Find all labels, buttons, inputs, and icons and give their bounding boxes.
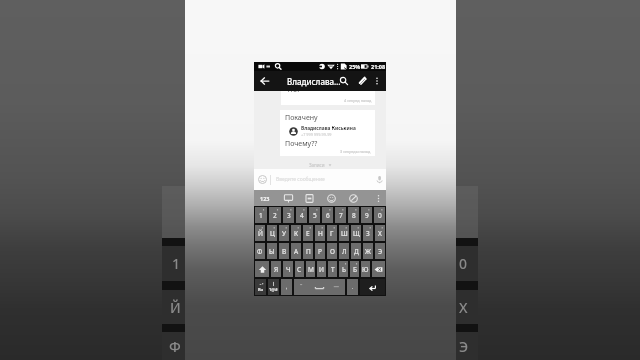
staticText: 1 [172, 254, 181, 273]
button[interactable]: Ц [267, 225, 277, 241]
button[interactable]: Voice message [372, 169, 386, 190]
button[interactable]: , [281, 279, 292, 295]
button[interactable]: Н [315, 225, 325, 241]
staticText: 7 [339, 211, 343, 220]
button[interactable]: Search [334, 71, 354, 91]
staticText: 1 [259, 211, 263, 220]
button[interactable]: Numbers [254, 190, 276, 206]
button[interactable]: Х [375, 225, 385, 241]
button[interactable]: Space [294, 279, 345, 295]
staticText: Записи [309, 162, 325, 168]
staticText: 9 [365, 211, 369, 220]
button[interactable]: П [303, 243, 313, 259]
button[interactable]: Symbols [268, 279, 279, 295]
staticText: Что? [285, 91, 301, 95]
button[interactable]: Emoji [323, 190, 340, 206]
button[interactable]: Я [271, 261, 281, 277]
button[interactable]: Т [328, 261, 337, 277]
staticText: Т [331, 265, 335, 274]
staticText: Ц [270, 229, 275, 238]
button[interactable]: 1 [255, 207, 267, 223]
staticText: 4 секунд назад [344, 98, 372, 103]
button[interactable]: Д [351, 243, 361, 259]
button[interactable]: Щ [351, 225, 361, 241]
staticText: И [319, 265, 324, 274]
staticText: 2 [273, 211, 277, 220]
staticText: Э [459, 337, 469, 356]
staticText: М [308, 265, 314, 274]
button[interactable]: З [363, 225, 373, 241]
staticText: Ru [258, 287, 264, 292]
staticText: 5 [313, 211, 317, 220]
button[interactable]: Л [339, 243, 349, 259]
staticText: Щ [353, 229, 360, 238]
button[interactable]: Ь [339, 261, 348, 277]
staticText: З [366, 229, 370, 238]
button[interactable]: Р [315, 243, 325, 259]
button[interactable]: 9 [361, 207, 372, 223]
staticText: Б [353, 265, 357, 274]
button[interactable]: Ы [267, 243, 277, 259]
staticText: А [294, 247, 299, 256]
staticText: 0 [378, 211, 382, 220]
staticText: . [352, 284, 354, 290]
button[interactable]: Clipboard [301, 190, 318, 206]
staticText: 1@# [269, 287, 278, 292]
staticText: 4 [300, 211, 304, 220]
button[interactable]: Themes [345, 190, 362, 206]
staticText: Е [306, 229, 310, 238]
button[interactable]: В [279, 243, 289, 259]
button[interactable]: С [295, 261, 304, 277]
staticText: О [330, 247, 335, 256]
button[interactable]: 8 [348, 207, 359, 223]
button[interactable]: Ш [339, 225, 349, 241]
button[interactable]: Shift [255, 261, 269, 277]
button[interactable]: К [291, 225, 301, 241]
button[interactable]: More options [368, 71, 386, 91]
staticText: Ч [286, 265, 291, 274]
staticText: Владислава Киськина [301, 125, 356, 132]
button[interactable]: Emoji [254, 169, 270, 190]
staticText: К [294, 229, 299, 238]
button[interactable]: А [291, 243, 301, 259]
staticText: Введите сообщение [276, 176, 372, 183]
button[interactable]: Ж [363, 243, 373, 259]
staticText: Ж [365, 247, 371, 256]
staticText: 123 [260, 195, 270, 202]
button[interactable]: 3 [283, 207, 294, 223]
button[interactable]: 7 [335, 207, 346, 223]
button[interactable]: . [347, 279, 358, 295]
staticText: В [282, 247, 287, 256]
button[interactable]: Й [255, 225, 265, 241]
button[interactable]: Г [327, 225, 337, 241]
staticText: Ф [169, 337, 181, 356]
staticText: Р [318, 247, 322, 256]
button[interactable]: 6 [322, 207, 333, 223]
button[interactable]: М [306, 261, 315, 277]
button[interactable]: 4 [296, 207, 307, 223]
button[interactable]: More [370, 190, 386, 206]
staticText: Ь [342, 265, 346, 274]
button[interactable]: Attach [352, 71, 372, 91]
button[interactable]: Е [303, 225, 313, 241]
button[interactable]: Ч [283, 261, 293, 277]
button[interactable]: И [317, 261, 326, 277]
button[interactable]: Б [350, 261, 359, 277]
button[interactable]: Language [255, 279, 266, 295]
button[interactable]: О [327, 243, 337, 259]
button[interactable]: Backspace [372, 261, 385, 277]
staticText: 25% [349, 63, 361, 70]
button[interactable]: Ф [255, 243, 265, 259]
button[interactable]: Ю [361, 261, 370, 277]
button[interactable]: Back [254, 71, 276, 91]
button[interactable]: Enter [360, 279, 385, 295]
staticText: П [306, 247, 311, 256]
staticText: Г [330, 229, 334, 238]
button[interactable]: У [279, 225, 289, 241]
staticText: Х [378, 229, 382, 238]
button[interactable]: Э [375, 243, 385, 259]
button[interactable]: 2 [269, 207, 281, 223]
button[interactable]: 0 [374, 207, 385, 223]
button[interactable]: Keyboard layout [280, 190, 297, 206]
button[interactable]: 5 [309, 207, 320, 223]
